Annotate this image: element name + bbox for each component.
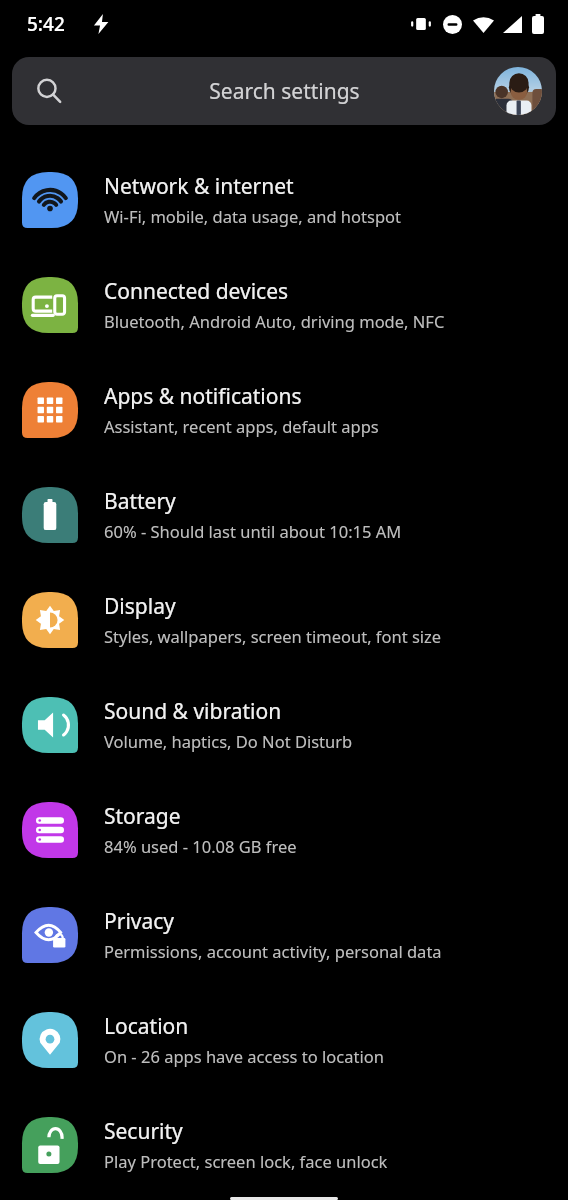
button[interactable]: Account	[494, 67, 542, 115]
button[interactable]: Sound & vibration	[0, 672, 568, 777]
staticText: Privacy	[104, 907, 175, 936]
staticText: 84% used - 10.08 GB free	[104, 835, 297, 857]
button[interactable]: Battery	[0, 462, 568, 567]
button[interactable]: Apps & notifications	[0, 357, 568, 462]
staticText: Bluetooth, Android Auto, driving mode, N…	[104, 310, 445, 332]
staticText: 5:42	[27, 11, 65, 37]
staticText: Assistant, recent apps, default apps	[104, 415, 379, 437]
button[interactable]: Display	[0, 567, 568, 672]
staticText: Connected devices	[104, 277, 289, 306]
button[interactable]: Connected devices	[0, 252, 568, 357]
button[interactable]: Security	[0, 1092, 568, 1197]
staticText: Play Protect, screen lock, face unlock	[104, 1150, 388, 1172]
button[interactable]: Network & internet	[0, 147, 568, 252]
staticText: Display	[104, 592, 176, 621]
button[interactable]: Search	[12, 57, 556, 125]
staticText: Security	[104, 1117, 183, 1146]
staticText: Storage	[104, 802, 181, 831]
staticText: Sound & vibration	[104, 697, 282, 726]
button[interactable]: Privacy	[0, 882, 568, 987]
staticText: Location	[104, 1012, 189, 1041]
button[interactable]: Location	[0, 987, 568, 1092]
staticText: Search settings	[209, 77, 360, 106]
staticText: Styles, wallpapers, screen timeout, font…	[104, 625, 442, 647]
button[interactable]: Storage	[0, 777, 568, 882]
staticText: On - 26 apps have access to location	[104, 1045, 384, 1067]
staticText: Permissions, account activity, personal …	[104, 940, 442, 962]
staticText: Wi-Fi, mobile, data usage, and hotspot	[104, 205, 401, 227]
staticText: 60% - Should last until about 10:15 AM	[104, 520, 402, 542]
staticText: Apps & notifications	[104, 382, 302, 411]
staticText: Battery	[104, 487, 176, 516]
staticText: Network & internet	[104, 172, 294, 201]
staticText: Volume, haptics, Do Not Disturb	[104, 730, 353, 752]
other: Search	[36, 78, 62, 104]
